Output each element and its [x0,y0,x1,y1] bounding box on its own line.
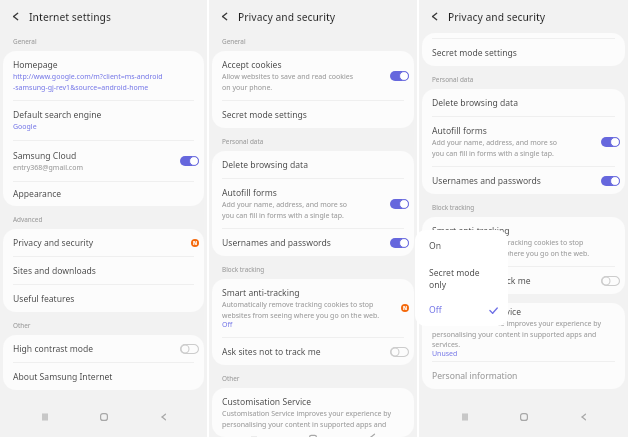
button[interactable]: Delete browsing data [212,151,414,178]
staticText: Other [222,374,240,383]
button[interactable]: Home [512,405,536,429]
button[interactable]: Appearance [3,182,204,206]
staticText: General [13,37,37,46]
staticText: Customisation Service improves your expe… [222,409,392,429]
button[interactable]: Personal information [422,362,625,389]
staticText: Unused [432,349,458,359]
button[interactable]: Navigate up [209,0,238,33]
button[interactable]: Smart anti-tracking [212,279,414,337]
button[interactable]: Ask sites not to track me [212,338,414,365]
button[interactable]: Ask sites not to track me [422,267,625,294]
button[interactable]: Secret mode settings [422,39,625,66]
staticText: Autofill forms [222,187,277,199]
staticText: Customisation Service [432,306,522,318]
button[interactable]: Default search engine [3,101,204,140]
staticText: Delete browsing data [222,159,309,171]
button[interactable]: Usernames and passwords [212,229,414,256]
button[interactable]: Delete browsing data [422,89,625,116]
button[interactable]: Secret mode only [419,262,508,294]
staticText: Other [13,321,31,330]
staticText: Off [429,304,442,316]
button[interactable]: Samsung Cloud [3,141,204,181]
button[interactable]: Home [92,405,116,429]
button[interactable]: Autofill forms [212,179,414,228]
staticText: Default search engine [13,109,102,121]
staticText: Privacy and security [238,10,336,24]
button[interactable]: Navigate up [0,0,29,33]
staticText: Sites and downloads [13,265,96,277]
button[interactable]: Sites and downloads [3,257,204,284]
staticText: Delete browsing data [432,97,519,109]
staticText: Google [13,122,37,132]
staticText: Accept cookies [222,59,282,71]
staticText: Privacy and security [448,10,546,24]
staticText: Automatically remove tracking cookies to… [432,238,590,258]
staticText: Ask sites not to track me [222,346,321,358]
button[interactable]: Back [151,405,175,429]
staticText: Add your name, address, and more so you … [222,200,348,220]
staticText: Advanced [13,215,43,224]
staticText: http://www.google.com/m?client=ms-androi… [13,72,163,92]
staticText: Smart anti-tracking [432,225,510,237]
button[interactable]: Smart anti-tracking [422,217,625,266]
staticText: Privacy and security [13,237,94,249]
staticText: Off [222,320,233,330]
staticText: Samsung Cloud [13,150,77,162]
staticText: On [429,240,442,252]
staticText: High contrast mode [13,343,94,355]
staticText: Smart anti-tracking [222,287,300,299]
button[interactable]: Autofill forms [422,117,625,166]
button[interactable]: Off [419,294,508,326]
button[interactable]: Recent apps [33,405,57,429]
staticText: Usernames and passwords [432,175,541,187]
button[interactable]: High contrast mode [3,335,204,362]
staticText: Autofill forms [432,125,487,137]
staticText: Useful features [13,293,75,305]
button[interactable]: About Samsung Internet [3,363,204,390]
staticText: Customisation Service improves your expe… [432,319,602,349]
button[interactable]: Recent apps [453,405,477,429]
staticText: Allow websites to save and read cookies … [222,72,354,92]
button[interactable]: Back [571,405,595,429]
staticText: entry368@gmail.com [13,163,83,173]
staticText: Block tracking [222,265,265,274]
button[interactable]: On [419,230,508,262]
staticText: About Samsung Internet [13,371,113,383]
staticText: Internet settings [29,10,111,24]
button[interactable]: Navigate up [419,0,448,33]
staticText: Secret mode settings [222,109,307,121]
staticText: Automatically remove tracking cookies to… [222,300,380,320]
staticText: Personal data [222,137,264,146]
staticText: Homepage [13,59,58,71]
staticText: Secret mode settings [432,47,517,59]
button[interactable]: Secret mode settings [212,101,414,128]
staticText: Secret mode only [429,267,498,290]
staticText: General [222,37,246,46]
button[interactable]: Customisation Service [212,388,414,437]
button[interactable]: Customisation Service [422,303,625,361]
staticText: Personal data [432,75,474,84]
staticText: Block tracking [432,203,475,212]
button[interactable]: Privacy and security [3,229,204,256]
staticText: Ask sites not to track me [432,275,531,287]
staticText: Appearance [13,188,62,200]
staticText: Usernames and passwords [222,237,331,249]
staticText: N [193,240,198,247]
button[interactable]: Usernames and passwords [422,167,625,194]
button[interactable]: Homepage [3,51,204,100]
staticText: Add your name, address, and more so you … [432,138,558,158]
button[interactable]: Accept cookies [212,51,414,100]
staticText: N [403,305,408,312]
button[interactable]: Useful features [3,285,204,312]
staticText: Personal information [432,370,518,382]
staticText: Customisation Service [222,396,312,408]
